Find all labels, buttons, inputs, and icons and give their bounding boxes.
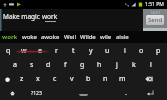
button[interactable]: h xyxy=(91,58,108,72)
button[interactable]: c xyxy=(46,72,63,86)
button[interactable]: Wilde xyxy=(78,31,98,43)
staticText: r xyxy=(55,46,58,56)
button[interactable]: q xyxy=(0,43,16,58)
staticText: Wilde xyxy=(80,33,96,41)
button[interactable]: p xyxy=(150,43,167,58)
staticText: awoke xyxy=(41,33,60,41)
staticText: aisle xyxy=(116,33,129,41)
staticText: p xyxy=(156,46,161,56)
button[interactable]: work xyxy=(0,31,20,43)
staticText: woke xyxy=(22,33,37,41)
staticText: q xyxy=(6,46,11,56)
button[interactable]: y xyxy=(82,43,99,58)
staticText: e xyxy=(38,46,42,56)
staticText: i xyxy=(124,46,126,56)
button[interactable]: i xyxy=(116,43,133,58)
button[interactable]: Weil xyxy=(62,31,78,43)
staticText: w xyxy=(21,46,27,56)
staticText: a xyxy=(13,60,17,70)
button[interactable]: k xyxy=(125,58,142,72)
button[interactable]: u xyxy=(99,43,116,58)
button[interactable]: woke xyxy=(20,31,39,43)
button[interactable]: n xyxy=(97,72,114,86)
button[interactable]: Enter xyxy=(133,86,167,100)
button[interactable]: r xyxy=(48,43,65,58)
staticText: h xyxy=(97,60,102,70)
staticText: j xyxy=(116,60,118,70)
button[interactable]: e xyxy=(32,43,48,58)
button[interactable]: awoke xyxy=(39,31,62,43)
button[interactable]: Space xyxy=(48,86,119,100)
staticText: g xyxy=(80,60,85,70)
button[interactable]: v xyxy=(63,72,80,86)
button[interactable]: z xyxy=(14,72,30,86)
staticText: s xyxy=(30,60,34,70)
button[interactable]: g xyxy=(74,58,91,72)
button[interactable]: ?123 xyxy=(25,86,48,100)
button[interactable]: d xyxy=(40,58,57,72)
button[interactable]: o xyxy=(133,43,150,58)
button[interactable]: Shift xyxy=(0,72,14,86)
staticText: work xyxy=(42,12,58,21)
staticText: work xyxy=(2,33,18,41)
button[interactable]: a xyxy=(7,58,23,72)
staticText: b xyxy=(86,74,91,84)
staticText: v xyxy=(70,74,74,84)
staticText: n xyxy=(103,74,108,84)
staticText: Make magic xyxy=(3,12,42,21)
button[interactable]: j xyxy=(108,58,125,72)
button[interactable]: Switch language xyxy=(0,86,25,100)
staticText: ?123 xyxy=(31,90,42,97)
button[interactable]: wile xyxy=(98,31,114,43)
staticText: 1:51 PM xyxy=(145,1,164,8)
staticText: Send xyxy=(148,16,163,24)
button[interactable]: s xyxy=(23,58,40,72)
button[interactable]: t xyxy=(65,43,82,58)
button[interactable]: m xyxy=(114,72,131,86)
staticText: o xyxy=(139,46,144,56)
staticText: f xyxy=(64,60,67,70)
button[interactable]: aisle xyxy=(114,31,131,43)
staticText: u xyxy=(105,46,110,56)
staticText: t xyxy=(72,46,75,56)
staticText: z xyxy=(20,74,24,84)
staticText: wile xyxy=(100,33,112,41)
button[interactable]: x xyxy=(30,72,46,86)
staticText: x xyxy=(36,74,40,84)
button[interactable]: b xyxy=(80,72,97,86)
button[interactable]: f xyxy=(57,58,74,72)
button[interactable]: . xyxy=(119,86,133,100)
staticText: l xyxy=(150,60,152,70)
staticText: k xyxy=(132,60,136,70)
staticText: . xyxy=(125,88,127,98)
staticText: 140/1 xyxy=(150,10,161,15)
staticText: c xyxy=(53,74,57,84)
button[interactable]: l xyxy=(142,58,159,72)
button[interactable]: w xyxy=(16,43,32,58)
staticText: m xyxy=(119,74,126,84)
button[interactable]: Send xyxy=(146,15,164,25)
staticText: y xyxy=(89,46,93,56)
button[interactable]: Backspace xyxy=(131,72,167,86)
staticText: d xyxy=(46,60,51,70)
staticText: Weil xyxy=(64,33,76,41)
